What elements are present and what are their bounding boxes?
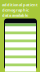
staticText: additional patient [2,2,38,7]
staticText: data available [2,13,28,18]
staticText: demographic [2,7,29,13]
